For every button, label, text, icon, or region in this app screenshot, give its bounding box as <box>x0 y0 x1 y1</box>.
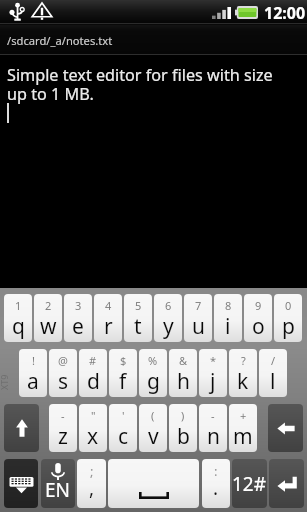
button[interactable]: 9 <box>244 294 272 342</box>
button[interactable]: ' <box>109 404 137 452</box>
button[interactable]: Shift <box>4 404 39 452</box>
staticText: b <box>177 422 190 451</box>
staticText: 2 <box>45 298 52 313</box>
staticText: w <box>40 312 57 341</box>
staticText: XT9 <box>0 374 10 390</box>
button[interactable]: Backspace <box>268 404 303 452</box>
button[interactable]: ; <box>77 459 106 508</box>
staticText: + <box>240 408 247 423</box>
button[interactable]: Space <box>108 459 199 508</box>
button[interactable]: 12# <box>232 459 267 508</box>
button[interactable]: ( <box>139 404 167 452</box>
button[interactable]: ) <box>169 404 197 452</box>
staticText: / <box>271 353 276 368</box>
staticText: 12# <box>232 471 267 497</box>
button[interactable]: Voice input, English <box>41 459 75 508</box>
staticText: 12:00 <box>264 2 306 24</box>
staticText: 6 <box>165 298 172 313</box>
staticText: j <box>210 367 216 396</box>
button[interactable]: - <box>49 404 77 452</box>
staticText: Simple text editor for files with size u… <box>7 64 273 104</box>
button[interactable]: - <box>199 404 227 452</box>
staticText: - <box>211 408 215 423</box>
button[interactable]: 6 <box>154 294 182 342</box>
button[interactable]: $ <box>109 349 137 397</box>
staticText: h <box>177 367 190 396</box>
staticText: # <box>89 353 97 368</box>
button[interactable]: @ <box>49 349 77 397</box>
staticText: : <box>214 462 218 480</box>
staticText: r <box>104 312 113 341</box>
staticText: 3 <box>75 298 82 313</box>
staticText: u <box>192 312 205 341</box>
staticText: x <box>87 422 99 451</box>
button[interactable]: % <box>139 349 167 397</box>
button[interactable]: # <box>79 349 107 397</box>
button[interactable]: " <box>79 404 107 452</box>
button[interactable]: + <box>229 404 257 452</box>
staticText: - <box>61 408 65 423</box>
staticText: t <box>134 312 142 341</box>
button[interactable]: /sdcard/_a/notes.txt <box>0 25 307 55</box>
staticText: ; <box>90 462 94 480</box>
staticText: /sdcard/_a/notes.txt <box>7 33 113 48</box>
button[interactable]: 5 <box>124 294 152 342</box>
staticText: l <box>270 367 276 396</box>
staticText: v <box>148 422 159 451</box>
staticText: a <box>27 367 39 396</box>
staticText: 8 <box>225 298 232 313</box>
staticText: EN <box>45 477 71 503</box>
button[interactable]: Enter <box>269 459 304 508</box>
staticText: @ <box>58 353 68 368</box>
button[interactable]: & <box>169 349 197 397</box>
button[interactable]: * <box>199 349 227 397</box>
staticText: m <box>233 422 253 451</box>
staticText: ' <box>122 408 125 423</box>
staticText: * <box>210 353 217 368</box>
staticText: z <box>58 422 68 451</box>
staticText: % <box>148 353 158 368</box>
staticText: e <box>72 312 84 341</box>
staticText: s <box>58 367 69 396</box>
staticText: d <box>87 367 100 396</box>
button[interactable]: ? <box>229 349 257 397</box>
button[interactable]: 7 <box>184 294 212 342</box>
staticText: p <box>282 312 295 341</box>
staticText: & <box>179 353 188 368</box>
staticText: ? <box>241 353 246 368</box>
staticText: 4 <box>105 298 112 313</box>
staticText: ( <box>151 408 155 423</box>
button[interactable]: ! <box>19 349 47 397</box>
staticText: 0 <box>285 298 292 313</box>
button[interactable]: 1 <box>4 294 32 342</box>
button[interactable]: 0 <box>274 294 302 342</box>
staticText: $ <box>120 353 127 368</box>
staticText: i <box>225 312 231 341</box>
staticText: 1 <box>15 298 22 313</box>
staticText: . <box>213 475 219 501</box>
button[interactable]: 3 <box>64 294 92 342</box>
staticText: 9 <box>255 298 262 313</box>
staticText: g <box>147 367 160 396</box>
staticText: ) <box>181 408 185 423</box>
button[interactable]: : <box>202 459 230 508</box>
staticText: f <box>119 367 127 396</box>
staticText: ! <box>32 353 35 368</box>
staticText: 7 <box>195 298 202 313</box>
button[interactable]: / <box>259 349 287 397</box>
staticText: o <box>252 312 265 341</box>
staticText: k <box>237 367 249 396</box>
button[interactable]: 2 <box>34 294 62 342</box>
staticText: n <box>207 422 220 451</box>
staticText: c <box>118 422 129 451</box>
button[interactable]: 8 <box>214 294 242 342</box>
staticText: , <box>89 475 95 501</box>
staticText: 5 <box>135 298 142 313</box>
staticText: y <box>163 312 174 341</box>
staticText: " <box>91 408 96 423</box>
staticText: q <box>12 312 25 341</box>
button[interactable]: Hide keyboard <box>4 459 38 508</box>
button[interactable]: 4 <box>94 294 122 342</box>
